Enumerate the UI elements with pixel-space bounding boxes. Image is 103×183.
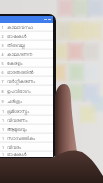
- button[interactable]: 10: [0, 106, 53, 116]
- staticText: ഉപവിഭാഗം: [7, 89, 31, 94]
- staticText: ആമുഖവും: [7, 127, 28, 132]
- staticText: 1: [1, 25, 4, 30]
- button[interactable]: 6: [0, 68, 53, 77]
- button[interactable]: 2: [0, 32, 53, 41]
- button[interactable]: 7: [0, 77, 53, 86]
- staticText: 10: [1, 109, 5, 114]
- staticText: വർഗ്ഗീകരണം: [7, 79, 36, 84]
- button[interactable]: 9: [0, 96, 53, 106]
- staticText: കാലഗണന: [7, 52, 33, 57]
- staticText: കേരളം: [7, 61, 23, 66]
- staticText: ഭാഷകൾ: [7, 34, 27, 39]
- button[interactable]: 14: [0, 143, 53, 152]
- staticText: കാലാവസ്ഥ: [7, 25, 33, 30]
- staticText: 14: [1, 145, 5, 150]
- staticText: വിവരണം: [7, 118, 28, 123]
- staticText: തിരുവല്ല: [7, 43, 25, 48]
- staticText: 8: [1, 89, 4, 94]
- staticText: 11: [1, 118, 5, 123]
- staticText: വിവരം: [7, 145, 22, 150]
- staticText: ഭാരതത്തിൽ: [7, 70, 34, 75]
- staticText: ഭൂമിശാസ്ത്രം: [7, 109, 30, 114]
- button[interactable]: 5: [0, 59, 53, 68]
- button[interactable]: 13: [0, 134, 53, 143]
- button[interactable]: 15: [0, 152, 53, 157]
- staticText: 3: [1, 43, 4, 48]
- staticText: 2: [1, 34, 4, 39]
- button[interactable]: 8: [0, 86, 53, 96]
- staticText: ഭാഷകൾ: [7, 152, 27, 157]
- staticText: 12: [1, 127, 5, 132]
- staticText: 6: [1, 70, 4, 75]
- button[interactable]: 1: [0, 23, 53, 32]
- staticText: 5: [1, 61, 4, 66]
- staticText: 4: [1, 52, 4, 57]
- staticText: സാമ്പത്തികം: [7, 136, 36, 141]
- staticText: 13: [1, 136, 5, 141]
- staticText: 15: [1, 152, 5, 157]
- staticText: ചരിത്രം: [7, 99, 23, 104]
- staticText: 7: [1, 79, 4, 84]
- button[interactable]: 12: [0, 125, 53, 134]
- button[interactable]: 11: [0, 116, 53, 125]
- button[interactable]: 3: [0, 41, 53, 50]
- staticText: 9: [1, 99, 4, 104]
- button[interactable]: 4: [0, 50, 53, 59]
